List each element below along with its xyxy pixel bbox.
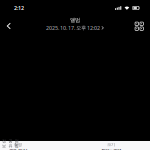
staticText: 2025. 10. 17. 오후 12:02 xyxy=(46,24,100,31)
button[interactable]: 공유 xyxy=(8,139,12,148)
button[interactable]: 앨범 xyxy=(35,17,115,30)
button[interactable]: 편집 xyxy=(15,139,19,148)
staticText: 공유 xyxy=(8,139,12,148)
button[interactable]: Grid view xyxy=(131,18,147,34)
staticText: 앨범 xyxy=(70,17,80,23)
staticText: 촬영 xyxy=(14,142,22,147)
staticText: 정보 xyxy=(2,139,6,148)
staticText: 2025.10.17 xyxy=(9,147,27,150)
button[interactable]: Back xyxy=(1,18,17,34)
button[interactable]: 정보 xyxy=(2,139,6,148)
staticText: 4032 × 3024 xyxy=(101,147,121,150)
staticText: 크기 xyxy=(107,142,115,147)
staticText: 2:12 xyxy=(14,4,24,12)
staticText: 편집 xyxy=(15,139,19,148)
